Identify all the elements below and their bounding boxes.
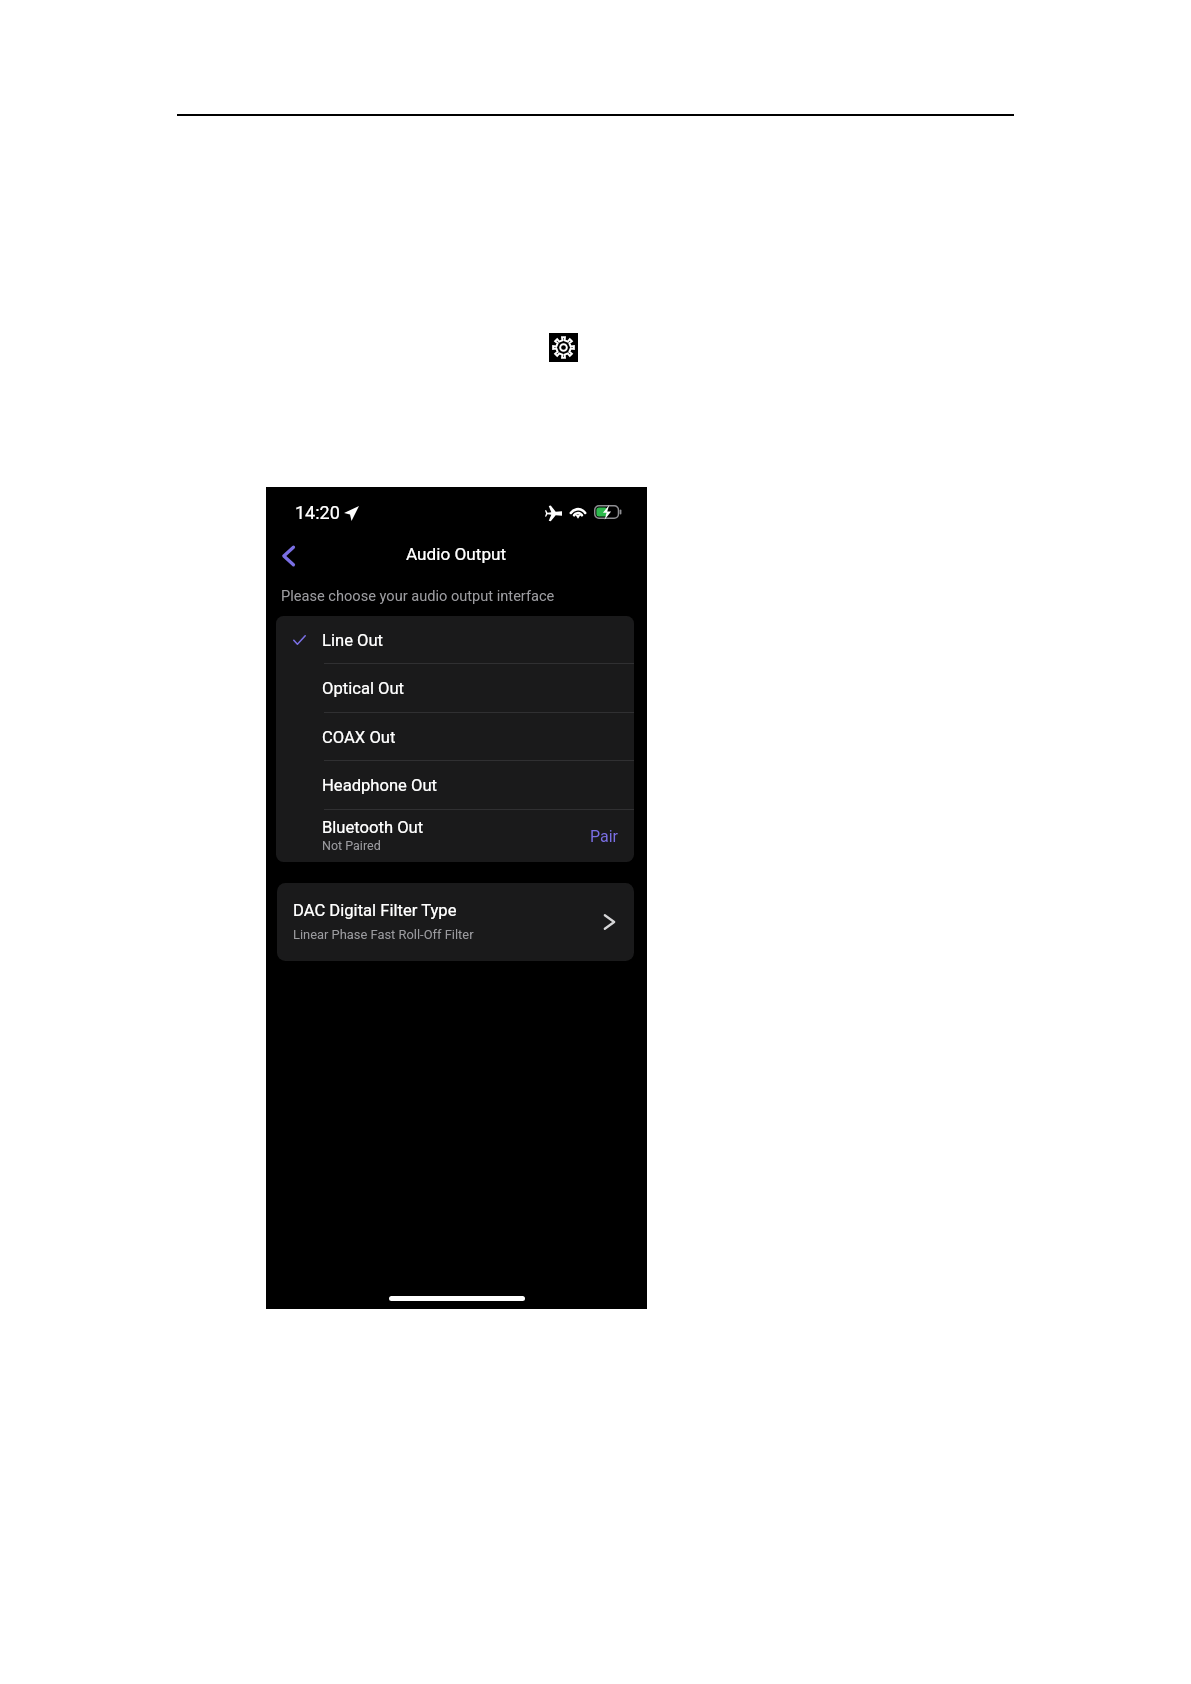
staticText: Headphone Out <box>322 776 438 795</box>
staticText: 14:20 <box>295 502 340 523</box>
button[interactable]: Back <box>275 542 302 569</box>
button[interactable]: Headphone Out <box>276 761 634 810</box>
staticText: Line Out <box>322 631 384 650</box>
staticText: Optical Out <box>322 679 405 698</box>
staticText: DAC Digital Filter Type <box>293 901 457 920</box>
button[interactable]: Pair <box>582 810 627 862</box>
button[interactable]: COAX Out <box>276 713 634 761</box>
button[interactable]: Optical Out <box>276 664 634 713</box>
staticText: Linear Phase Fast Roll-Off Filter <box>293 927 474 942</box>
staticText: Audio Output <box>406 544 507 564</box>
button[interactable]: Line Out <box>276 616 634 664</box>
staticText: Please choose your audio output interfac… <box>281 587 555 604</box>
staticText: COAX Out <box>322 728 396 747</box>
staticText: Bluetooth Out <box>322 818 424 837</box>
button[interactable]: DAC Digital Filter Type <box>277 883 634 961</box>
button[interactable]: Bluetooth Out <box>276 810 634 862</box>
staticText: Not Paired <box>322 838 381 853</box>
staticText: Pair <box>590 827 619 846</box>
button[interactable]: Settings <box>549 333 578 362</box>
